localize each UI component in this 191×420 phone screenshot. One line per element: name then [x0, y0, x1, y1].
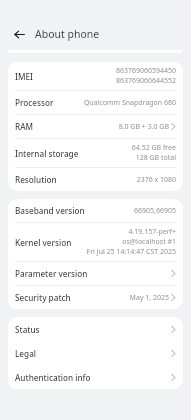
- staticText: Kernel version: [15, 237, 72, 248]
- button[interactable]: Resolution: [8, 168, 183, 191]
- staticText: Baseband version: [15, 205, 85, 216]
- button[interactable]: Parameter version: [8, 262, 183, 285]
- staticText: 64.52 GB free: [131, 143, 176, 153]
- button[interactable]: Baseband version: [8, 199, 183, 222]
- staticText: Qualcomm Snapdragon 680: [83, 98, 176, 108]
- staticText: 4.19.157-perf+: [128, 227, 176, 237]
- staticText: Processor: [15, 97, 54, 108]
- button[interactable]: Back: [11, 26, 27, 42]
- staticText: 66905,66905: [134, 206, 176, 216]
- staticText: IMEI: [15, 71, 33, 82]
- button[interactable]: RAM: [8, 115, 183, 138]
- staticText: 863769060594450: [115, 66, 176, 76]
- staticText: About phone: [35, 27, 100, 41]
- staticText: Resolution: [15, 174, 57, 185]
- button[interactable]: Internal storage: [8, 139, 183, 167]
- staticText: 8.0 GB + 3.0 GB: [118, 122, 169, 132]
- staticText: Internal storage: [15, 148, 79, 159]
- staticText: May 1, 2025: [129, 293, 169, 303]
- staticText: Legal: [15, 348, 37, 359]
- button[interactable]: IMEI: [8, 62, 183, 90]
- staticText: 2376 x 1080: [136, 175, 176, 185]
- button[interactable]: Legal: [8, 341, 183, 365]
- staticText: Parameter version: [15, 268, 88, 279]
- button[interactable]: Authentication info: [8, 365, 183, 389]
- button[interactable]: Processor: [8, 91, 183, 114]
- staticText: Status: [15, 324, 40, 335]
- staticText: 863769060644552: [115, 76, 176, 86]
- staticText: Authentication info: [15, 372, 91, 383]
- button[interactable]: Status: [8, 317, 183, 341]
- button[interactable]: Kernel version: [8, 223, 183, 261]
- staticText: Security patch: [15, 292, 71, 303]
- staticText: os@localhost #1: [122, 237, 176, 247]
- staticText: RAM: [15, 121, 34, 132]
- button[interactable]: Security patch: [8, 286, 183, 309]
- staticText: 128 GB total: [135, 153, 176, 163]
- staticText: Fri Jul 25 14:14:47 CST 2025: [86, 247, 176, 257]
